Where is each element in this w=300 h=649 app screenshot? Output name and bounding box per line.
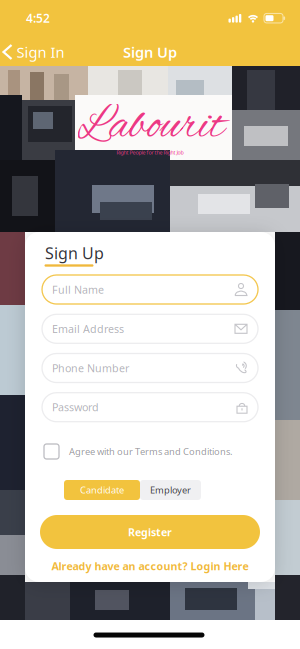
- staticText: Sign Up: [45, 242, 104, 264]
- staticText: Phone Number: [52, 361, 129, 375]
- staticText: Register: [128, 525, 172, 539]
- staticText: Sign In: [16, 42, 64, 62]
- staticText: Full Name: [52, 282, 104, 297]
- staticText: Sign Up: [123, 42, 177, 62]
- staticText: Labourit: [77, 97, 224, 157]
- button[interactable]: Employer: [140, 480, 201, 500]
- button[interactable]: Agree with our Terms and Conditions.: [44, 442, 260, 460]
- button[interactable]: Already have an account? Login Here: [51, 559, 248, 573]
- button[interactable]: Register: [40, 515, 260, 549]
- button[interactable]: Full Name: [42, 275, 258, 304]
- staticText: Agree with our Terms and Conditions.: [69, 445, 233, 458]
- staticText: Already have an account? Login Here: [51, 559, 248, 573]
- staticText: Candidate: [80, 484, 124, 496]
- staticText: Right People for the Right Job: [116, 149, 183, 156]
- button[interactable]: Email Address: [42, 314, 258, 343]
- button[interactable]: Candidate: [64, 480, 140, 500]
- button[interactable]: Password: [42, 393, 258, 422]
- button[interactable]: Phone Number: [42, 353, 258, 382]
- staticText: 4:52: [26, 10, 50, 26]
- staticText: Password: [52, 400, 99, 414]
- button[interactable]: Sign In: [3, 42, 64, 62]
- staticText: Email Address: [52, 322, 124, 336]
- staticText: Employer: [150, 484, 191, 496]
